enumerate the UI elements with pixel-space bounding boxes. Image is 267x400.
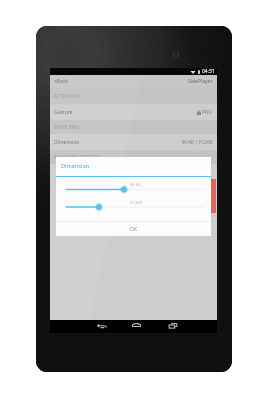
button[interactable]: Home [128,320,144,333]
staticText: SidePlayer [188,78,213,85]
staticText: ADVANCED SETTINGS [54,154,100,160]
staticText: SWIPE AREA [54,124,80,130]
staticText: <Back [54,78,68,85]
staticText: W:40 | H:260 [182,139,213,146]
button[interactable]: Back [93,320,109,333]
button[interactable]: Gesture [50,104,217,120]
staticText: OK [130,226,138,233]
button[interactable]: Dimension [50,134,217,150]
button[interactable]: <Back [54,78,68,85]
button[interactable]: OK [56,222,211,236]
staticText: Dimension [54,139,80,146]
staticText: Gesture [54,109,73,116]
staticText: ACTIVATION [54,93,80,99]
staticText: W: 40 [130,182,141,187]
staticText: 04:31 [202,68,215,75]
button[interactable]: Recent apps [165,320,181,333]
staticText: PRO [202,109,213,116]
staticText: Dimension [61,162,90,170]
staticText: H: 260 [130,200,142,205]
